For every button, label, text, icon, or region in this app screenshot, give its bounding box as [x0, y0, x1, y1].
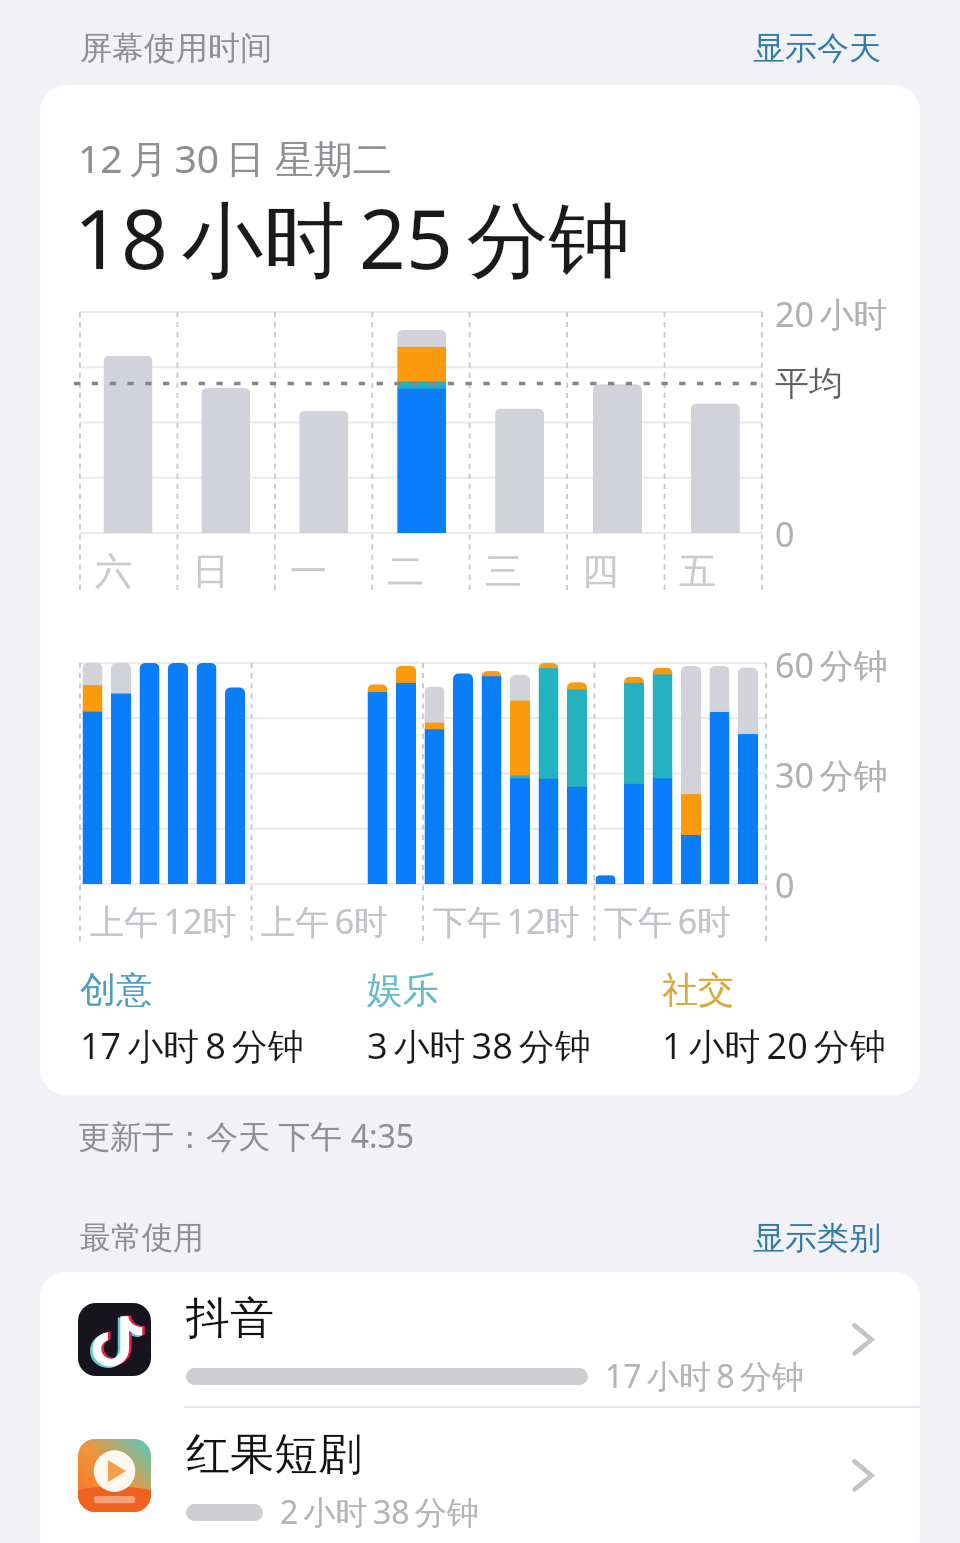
staticText: 六	[95, 548, 132, 595]
button[interactable]: 显示类别	[753, 1218, 881, 1258]
staticText: 一	[290, 548, 327, 595]
other: Open details	[852, 1459, 874, 1492]
button[interactable]: 抖音	[40, 1272, 920, 1406]
staticText: 3 小时 38 分钟	[367, 1021, 591, 1070]
staticText: 17 小时 8 分钟	[605, 1354, 804, 1398]
staticText: 娱乐	[367, 967, 439, 1012]
button[interactable]: 屏幕使用时间	[80, 28, 272, 68]
staticText: 下午 6时	[604, 898, 732, 944]
staticText: 显示类别	[753, 1218, 881, 1258]
staticText: 18 小时 25 分钟	[74, 181, 631, 293]
staticText: 五	[679, 548, 716, 595]
staticText: 下午 12时	[433, 898, 580, 944]
staticText: 三	[485, 548, 522, 595]
staticText: 红果短剧	[186, 1427, 362, 1482]
staticText: 创意	[80, 967, 152, 1012]
staticText: 60 分钟	[775, 642, 888, 688]
staticText: 四	[582, 548, 619, 595]
staticText: 0	[775, 511, 795, 557]
staticText: 2 小时 38 分钟	[280, 1490, 479, 1534]
staticText: 屏幕使用时间	[80, 28, 272, 68]
staticText: 17 小时 8 分钟	[80, 1021, 304, 1070]
staticText: 更新于：今天 下午 4:35	[78, 1114, 415, 1158]
staticText: 最常使用	[80, 1218, 204, 1257]
staticText: 上午 12时	[90, 898, 237, 944]
staticText: 二	[387, 548, 424, 595]
button[interactable]: 红果短剧	[40, 1408, 920, 1542]
staticText: 30 分钟	[775, 752, 888, 798]
staticText: 12 月 30 日 星期二	[78, 131, 392, 184]
other: Open details	[852, 1323, 874, 1356]
staticText: 日	[192, 548, 229, 595]
staticText: 上午 6时	[261, 898, 389, 944]
button[interactable]: 最常使用	[80, 1218, 204, 1257]
staticText: 显示今天	[753, 28, 881, 68]
staticText: 社交	[662, 967, 734, 1012]
button[interactable]: 显示今天	[753, 28, 881, 68]
staticText: 平均	[775, 362, 843, 405]
staticText: 1 小时 20 分钟	[662, 1021, 886, 1070]
staticText: 抖音	[186, 1291, 274, 1346]
staticText: 0	[775, 862, 795, 908]
staticText: 20 小时	[775, 291, 888, 337]
